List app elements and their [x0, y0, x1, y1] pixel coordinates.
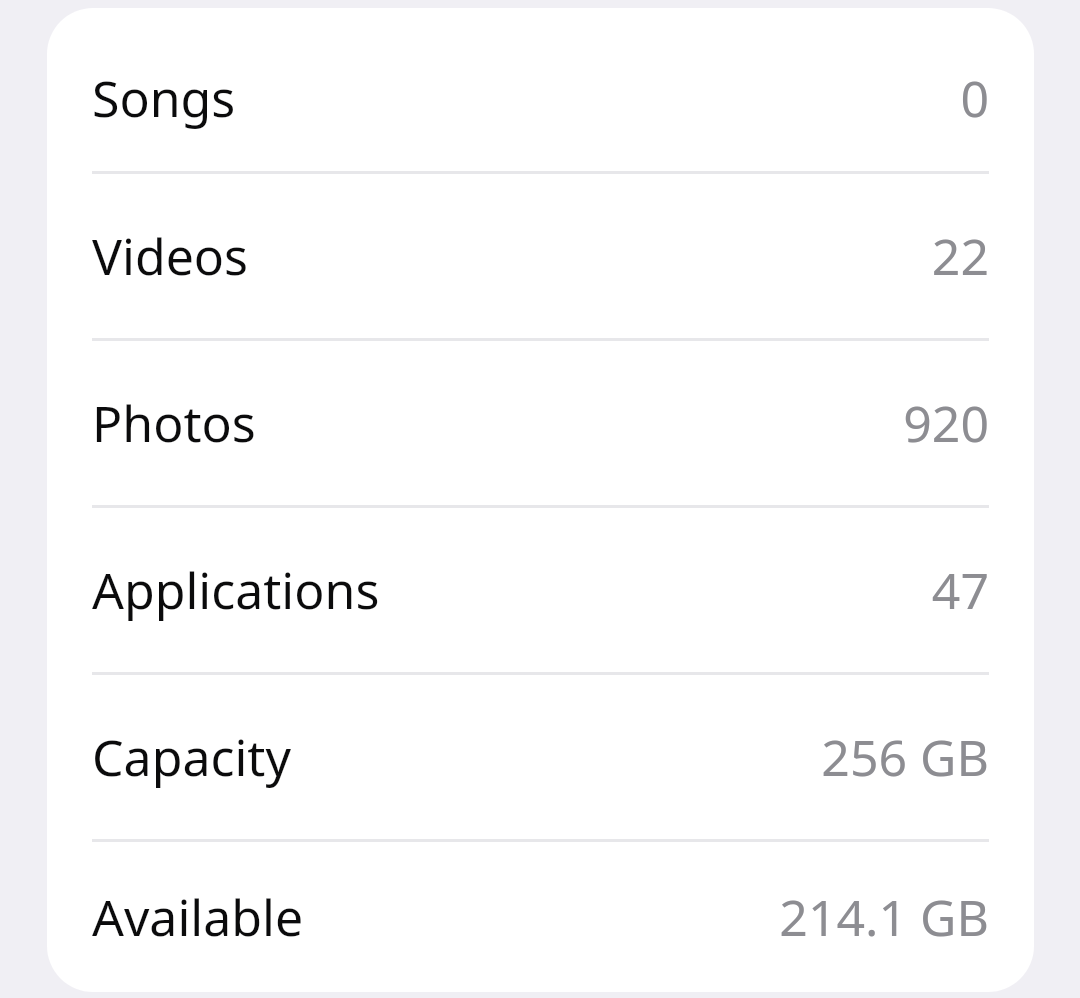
staticText: Available	[92, 883, 779, 951]
staticText: 47	[931, 556, 989, 624]
button[interactable]: Photos	[47, 341, 1034, 505]
staticText: Capacity	[92, 723, 821, 791]
staticText: 256 GB	[821, 723, 989, 791]
button[interactable]: Applications	[47, 508, 1034, 672]
button[interactable]: Capacity	[47, 675, 1034, 839]
staticText: Songs	[92, 64, 960, 132]
button[interactable]: Available	[47, 842, 1034, 992]
staticText: 22	[931, 222, 989, 290]
staticText: Videos	[92, 222, 931, 290]
staticText: Photos	[92, 389, 903, 457]
staticText: 214.1 GB	[779, 883, 989, 951]
button[interactable]: Songs	[47, 8, 1034, 171]
button[interactable]: Videos	[47, 174, 1034, 338]
staticText: 920	[903, 389, 989, 457]
staticText: Applications	[92, 556, 931, 624]
staticText: 0	[960, 64, 989, 132]
